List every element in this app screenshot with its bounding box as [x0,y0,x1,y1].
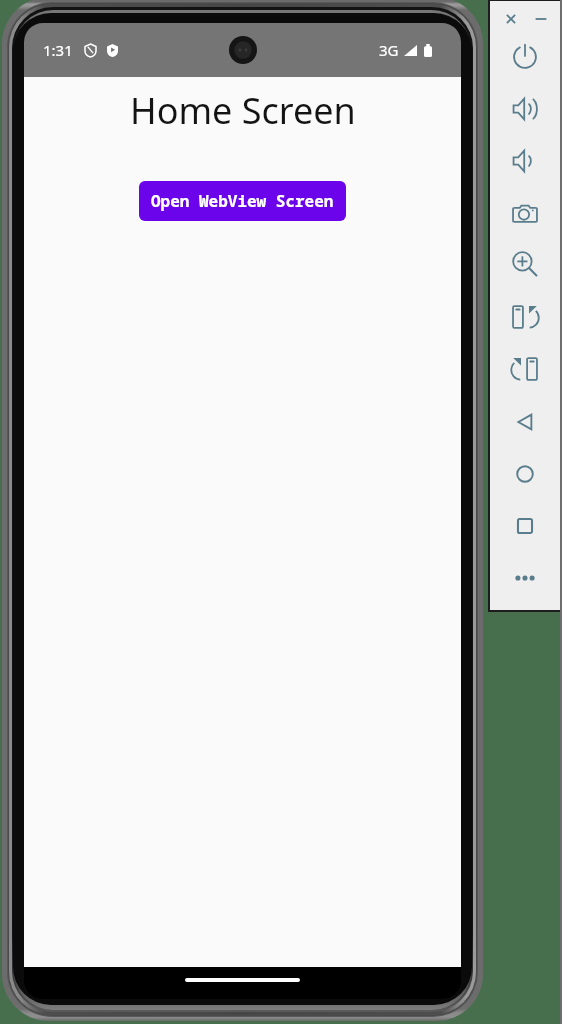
button[interactable]: Volume up [512,96,538,122]
button[interactable]: Minimize emulator [532,10,550,28]
button[interactable]: Take screenshot [512,200,538,226]
button[interactable]: Back [512,409,538,435]
button[interactable]: More [512,565,538,591]
staticText: 3G [379,40,399,60]
button[interactable]: Open WebView Screen [139,181,346,221]
button[interactable]: Volume down [512,148,538,174]
button[interactable]: Rotate left [512,356,538,382]
staticText: Home Screen [130,86,356,135]
staticText: Open WebView Screen [151,190,334,212]
button[interactable]: Home [512,461,538,487]
button[interactable]: Overview [512,513,538,539]
button[interactable]: Power [512,44,538,70]
button[interactable]: Close emulator [502,10,520,28]
staticText: 1:31 [43,40,73,60]
button[interactable]: Rotate right [512,304,538,330]
button[interactable]: Zoom in [512,251,538,277]
